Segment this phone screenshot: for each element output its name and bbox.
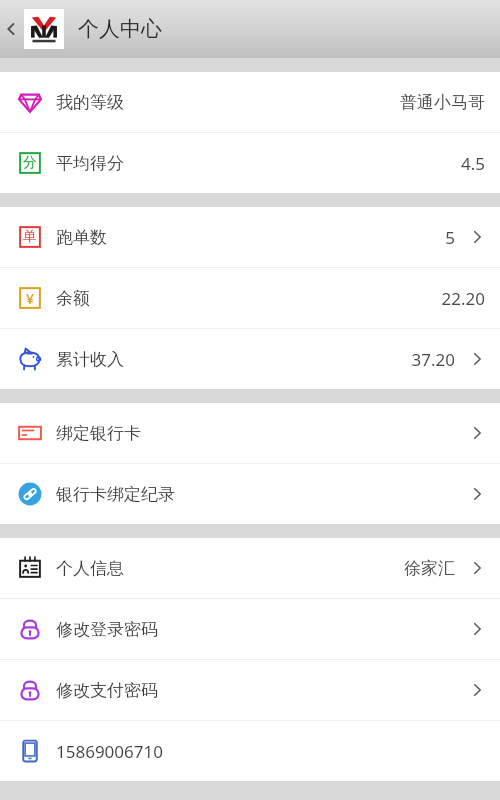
staticText: 我的等级 <box>56 92 124 113</box>
button[interactable]: 银行卡绑定纪录 <box>0 464 500 524</box>
staticText: 37.20 <box>411 348 455 371</box>
staticText: 15869006710 <box>56 740 163 763</box>
button[interactable]: ¥ <box>0 268 500 328</box>
button[interactable]: Back <box>0 0 22 58</box>
staticText: 分 <box>23 154 37 172</box>
staticText: 普通小马哥 <box>400 92 485 113</box>
staticText: 余额 <box>56 288 90 309</box>
button[interactable]: 15869006710 <box>0 721 500 781</box>
button[interactable]: 分 <box>0 133 500 193</box>
staticText: 个人信息 <box>56 558 124 579</box>
button[interactable]: 修改登录密码 <box>0 599 500 659</box>
staticText: 单 <box>23 228 37 246</box>
staticText: 银行卡绑定纪录 <box>56 484 175 505</box>
button[interactable]: 单 <box>0 207 500 267</box>
staticText: ¥ <box>26 289 35 308</box>
staticText: 4.5 <box>460 152 485 175</box>
staticText: 绑定银行卡 <box>56 423 141 444</box>
button[interactable]: 个人信息 <box>0 538 500 598</box>
staticText: 平均得分 <box>56 153 124 174</box>
staticText: 累计收入 <box>56 349 124 370</box>
staticText: 修改支付密码 <box>56 680 158 701</box>
button[interactable]: 累计收入 <box>0 329 500 389</box>
staticText: 22.20 <box>441 287 485 310</box>
staticText: 徐家汇 <box>404 558 455 579</box>
button[interactable]: 绑定银行卡 <box>0 403 500 463</box>
staticText: 个人中心 <box>78 16 162 42</box>
staticText: 跑单数 <box>56 227 107 248</box>
button[interactable]: 我的等级 <box>0 72 500 132</box>
staticText: 5 <box>445 226 455 249</box>
button[interactable]: 修改支付密码 <box>0 660 500 720</box>
staticText: 修改登录密码 <box>56 619 158 640</box>
